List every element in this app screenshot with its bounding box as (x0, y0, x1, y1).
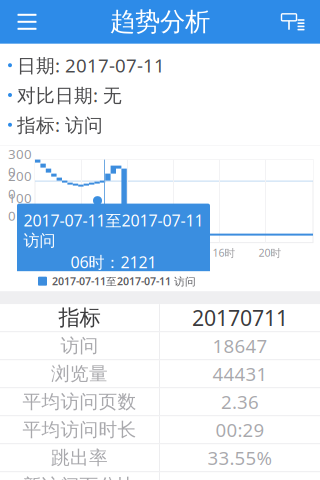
staticText: 指标: 访问 (17, 112, 103, 137)
staticText: 跳出率 (51, 446, 108, 469)
staticText: 00时 (28, 246, 51, 260)
staticText: 2000 (8, 167, 32, 202)
staticText: 44431 (212, 361, 267, 386)
staticText: 2017-07-11至2017-07-11 访问 (23, 210, 203, 250)
staticText: 08时 (120, 246, 143, 260)
staticText: 18647 (212, 333, 267, 358)
staticText: 16时 (212, 246, 235, 260)
staticText: 2017-07-11至2017-07-11 访问 (52, 274, 196, 288)
staticText: 1000 (8, 189, 32, 224)
staticText: 日期: 2017-07-11 (17, 53, 165, 78)
staticText: 33.55% (207, 445, 272, 470)
staticText: 平均访问页数 (22, 390, 136, 413)
staticText: 新访问百分比 (22, 474, 136, 480)
button[interactable]: 菜单 (0, 0, 54, 44)
staticText: 访问 (60, 334, 98, 357)
staticText: 04时 (74, 246, 97, 260)
staticText: 00:29 (215, 417, 264, 442)
staticText: 趋势分析 (110, 6, 210, 37)
staticText: 0 (24, 220, 32, 237)
staticText: 浏览量 (51, 362, 108, 385)
staticText: 2.36 (221, 389, 259, 414)
staticText: 3000 (8, 145, 32, 180)
staticText: 20170711 (192, 303, 288, 332)
staticText: 指标 (58, 305, 100, 331)
staticText: 对比日期: 无 (17, 83, 122, 107)
staticText: 平均访问时长 (22, 418, 136, 441)
staticText: 06时：2121 (70, 251, 156, 273)
staticText: 20时 (258, 246, 281, 260)
button[interactable]: 筛选 (266, 0, 320, 44)
